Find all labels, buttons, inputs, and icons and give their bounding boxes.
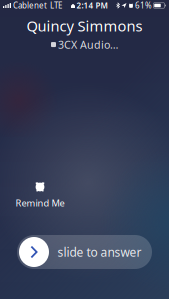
- button[interactable]: slide to answer: [17, 235, 152, 269]
- staticText: Cablenet: [13, 0, 47, 11]
- staticText: 3CX Audio…: [58, 37, 118, 52]
- staticText: slide to answer: [57, 244, 141, 260]
- staticText: 2:14 PM: [76, 0, 107, 11]
- staticText: 61%: [135, 0, 152, 11]
- staticText: Quincy Simmons: [26, 16, 142, 35]
- staticText: LTE: [50, 0, 62, 11]
- staticText: Remind Me: [15, 197, 64, 209]
- button[interactable]: Remind Me: [13, 181, 67, 209]
